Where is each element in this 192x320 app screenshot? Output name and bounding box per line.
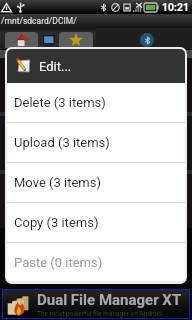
staticText: Upload (3 items) bbox=[14, 135, 110, 150]
button[interactable]: Paste (0 items) bbox=[7, 243, 185, 281]
staticText: Dual File Manager XT bbox=[37, 291, 182, 309]
staticText: Edit... bbox=[39, 59, 72, 74]
button[interactable]: Dual File Manager XT bbox=[3, 290, 189, 318]
button[interactable]: Favorites bbox=[59, 32, 93, 48]
button[interactable]: Move (3 items) bbox=[7, 163, 185, 202]
staticText: Move (3 items) bbox=[14, 175, 101, 190]
staticText: Delete (3 items) bbox=[14, 95, 106, 110]
button[interactable]: Upload (3 items) bbox=[7, 123, 185, 162]
button[interactable]: Device bbox=[38, 32, 59, 48]
button[interactable]: Home bbox=[5, 32, 38, 48]
staticText: The most powerful file manager on Androi… bbox=[37, 310, 164, 318]
button[interactable]: Copy (3 items) bbox=[7, 203, 185, 242]
button[interactable]: Edit... bbox=[7, 49, 185, 83]
button[interactable]: Bluetooth bbox=[96, 28, 192, 48]
staticText: /mnt/sdcard/DCIM/ bbox=[1, 16, 77, 26]
staticText: Paste (0 items) bbox=[14, 255, 103, 270]
button[interactable]: Delete (3 items) bbox=[7, 83, 185, 122]
staticText: 10:21 bbox=[162, 1, 190, 13]
staticText: Copy (3 items) bbox=[14, 215, 99, 230]
